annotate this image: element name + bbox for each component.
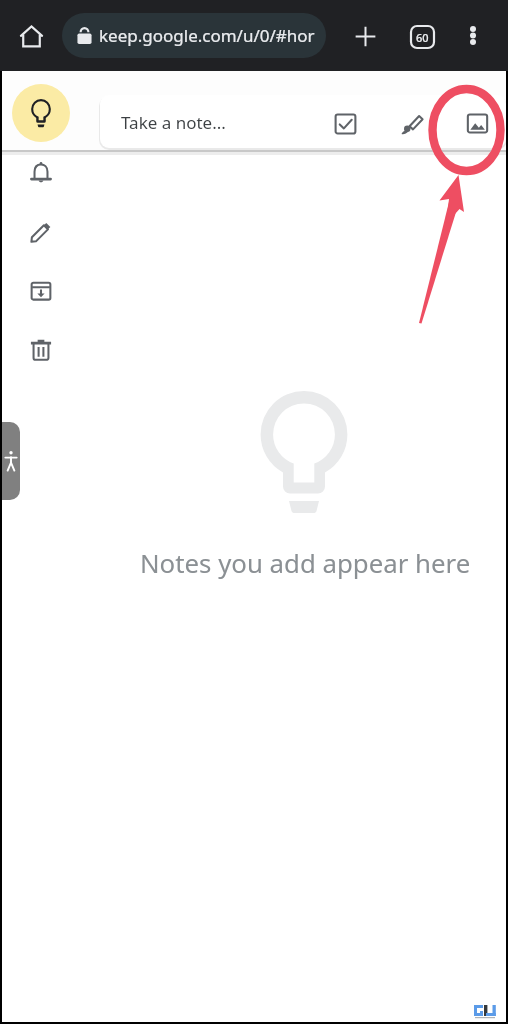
staticText: Take a note... — [121, 111, 226, 134]
staticText: 60 — [416, 30, 429, 45]
button[interactable]: New drawing — [395, 106, 430, 141]
button[interactable]: Rail item — [12, 262, 70, 320]
button[interactable]: Rail item — [12, 203, 70, 261]
button[interactable]: More options — [456, 19, 489, 52]
button[interactable]: Switch tabs, 60 open — [405, 19, 440, 54]
button[interactable]: New list — [328, 106, 363, 141]
staticText: keep.google.com/u/0/#hor — [99, 24, 315, 47]
button[interactable]: keep.google.com/u/0/#hor — [62, 13, 326, 58]
button[interactable]: Accessibility — [0, 422, 20, 500]
button[interactable]: Rail item — [12, 321, 70, 379]
button[interactable]: Take a note... — [100, 95, 506, 148]
staticText: Notes you add appear here — [140, 545, 471, 580]
button[interactable]: New note with image — [460, 106, 495, 141]
button[interactable]: Notes — [12, 84, 70, 142]
button[interactable]: Home — [14, 19, 48, 53]
button[interactable]: New tab — [348, 19, 382, 53]
button[interactable]: Rail item — [12, 144, 70, 202]
